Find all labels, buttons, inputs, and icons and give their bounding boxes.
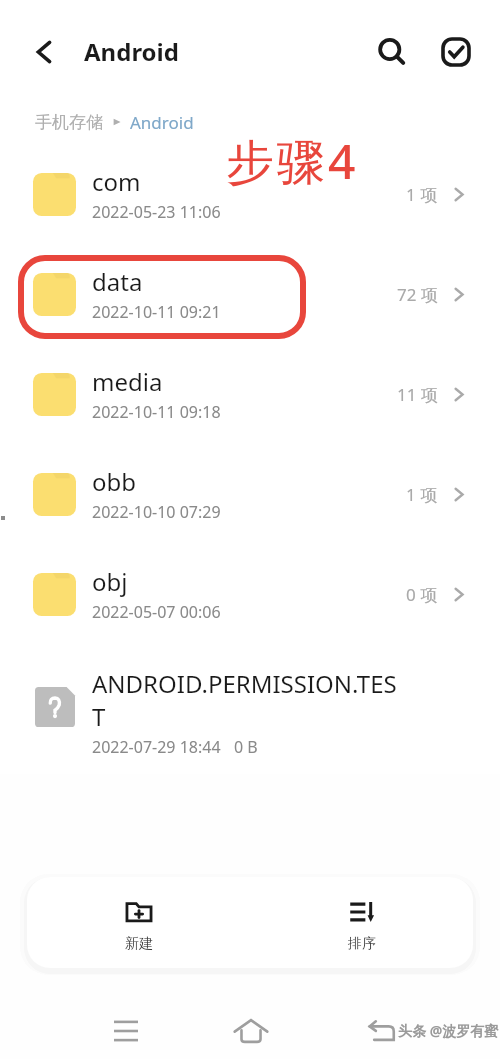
staticText: 2022-07-29 18:44 <box>92 736 221 758</box>
button[interactable]: Back <box>20 28 68 76</box>
button[interactable]: Search <box>368 28 416 76</box>
staticText: 72 项 <box>397 283 438 306</box>
button[interactable]: Home <box>228 1008 274 1054</box>
button[interactable]: Android <box>130 111 194 134</box>
staticText: 1 项 <box>406 183 438 206</box>
button[interactable]: 排序 <box>250 877 473 953</box>
staticText: 2022-10-10 07:29 <box>92 501 221 523</box>
staticText: T <box>92 700 106 733</box>
staticText: 2022-05-07 00:06 <box>92 601 221 623</box>
staticText: 2022-10-11 09:21 <box>92 301 221 323</box>
button[interactable]: ANDROID.PERMISSION.TES <box>0 644 500 774</box>
staticText: com <box>92 165 141 198</box>
button[interactable]: obb <box>0 444 500 544</box>
button[interactable]: data <box>0 244 500 344</box>
staticText: obb <box>92 465 137 498</box>
staticText: ANDROID.PERMISSION.TES <box>92 667 397 700</box>
staticText: 排序 <box>348 935 376 953</box>
staticText: 头条 @波罗有蜜 <box>398 1021 499 1040</box>
staticText: 手机存储 <box>35 112 103 133</box>
staticText: 0 项 <box>406 583 438 606</box>
staticText: 2022-10-11 09:18 <box>92 401 221 423</box>
staticText: 0 B <box>234 736 258 758</box>
staticText: 11 项 <box>397 383 438 406</box>
button[interactable]: 新建 <box>27 877 250 953</box>
button[interactable]: Back <box>360 1010 404 1054</box>
staticText: 新建 <box>125 935 153 953</box>
staticText: media <box>92 365 163 398</box>
staticText: 2022-05-23 11:06 <box>92 201 221 223</box>
button[interactable]: obj <box>0 544 500 644</box>
staticText: 步骤4 <box>226 128 359 194</box>
staticText: 1 项 <box>406 483 438 506</box>
staticText: Android <box>84 35 179 68</box>
staticText: obj <box>92 565 128 598</box>
staticText: data <box>92 265 143 298</box>
button[interactable]: Recents <box>104 1009 148 1053</box>
button[interactable]: media <box>0 344 500 444</box>
button[interactable]: Select all <box>432 28 480 76</box>
button[interactable]: com <box>0 144 500 244</box>
